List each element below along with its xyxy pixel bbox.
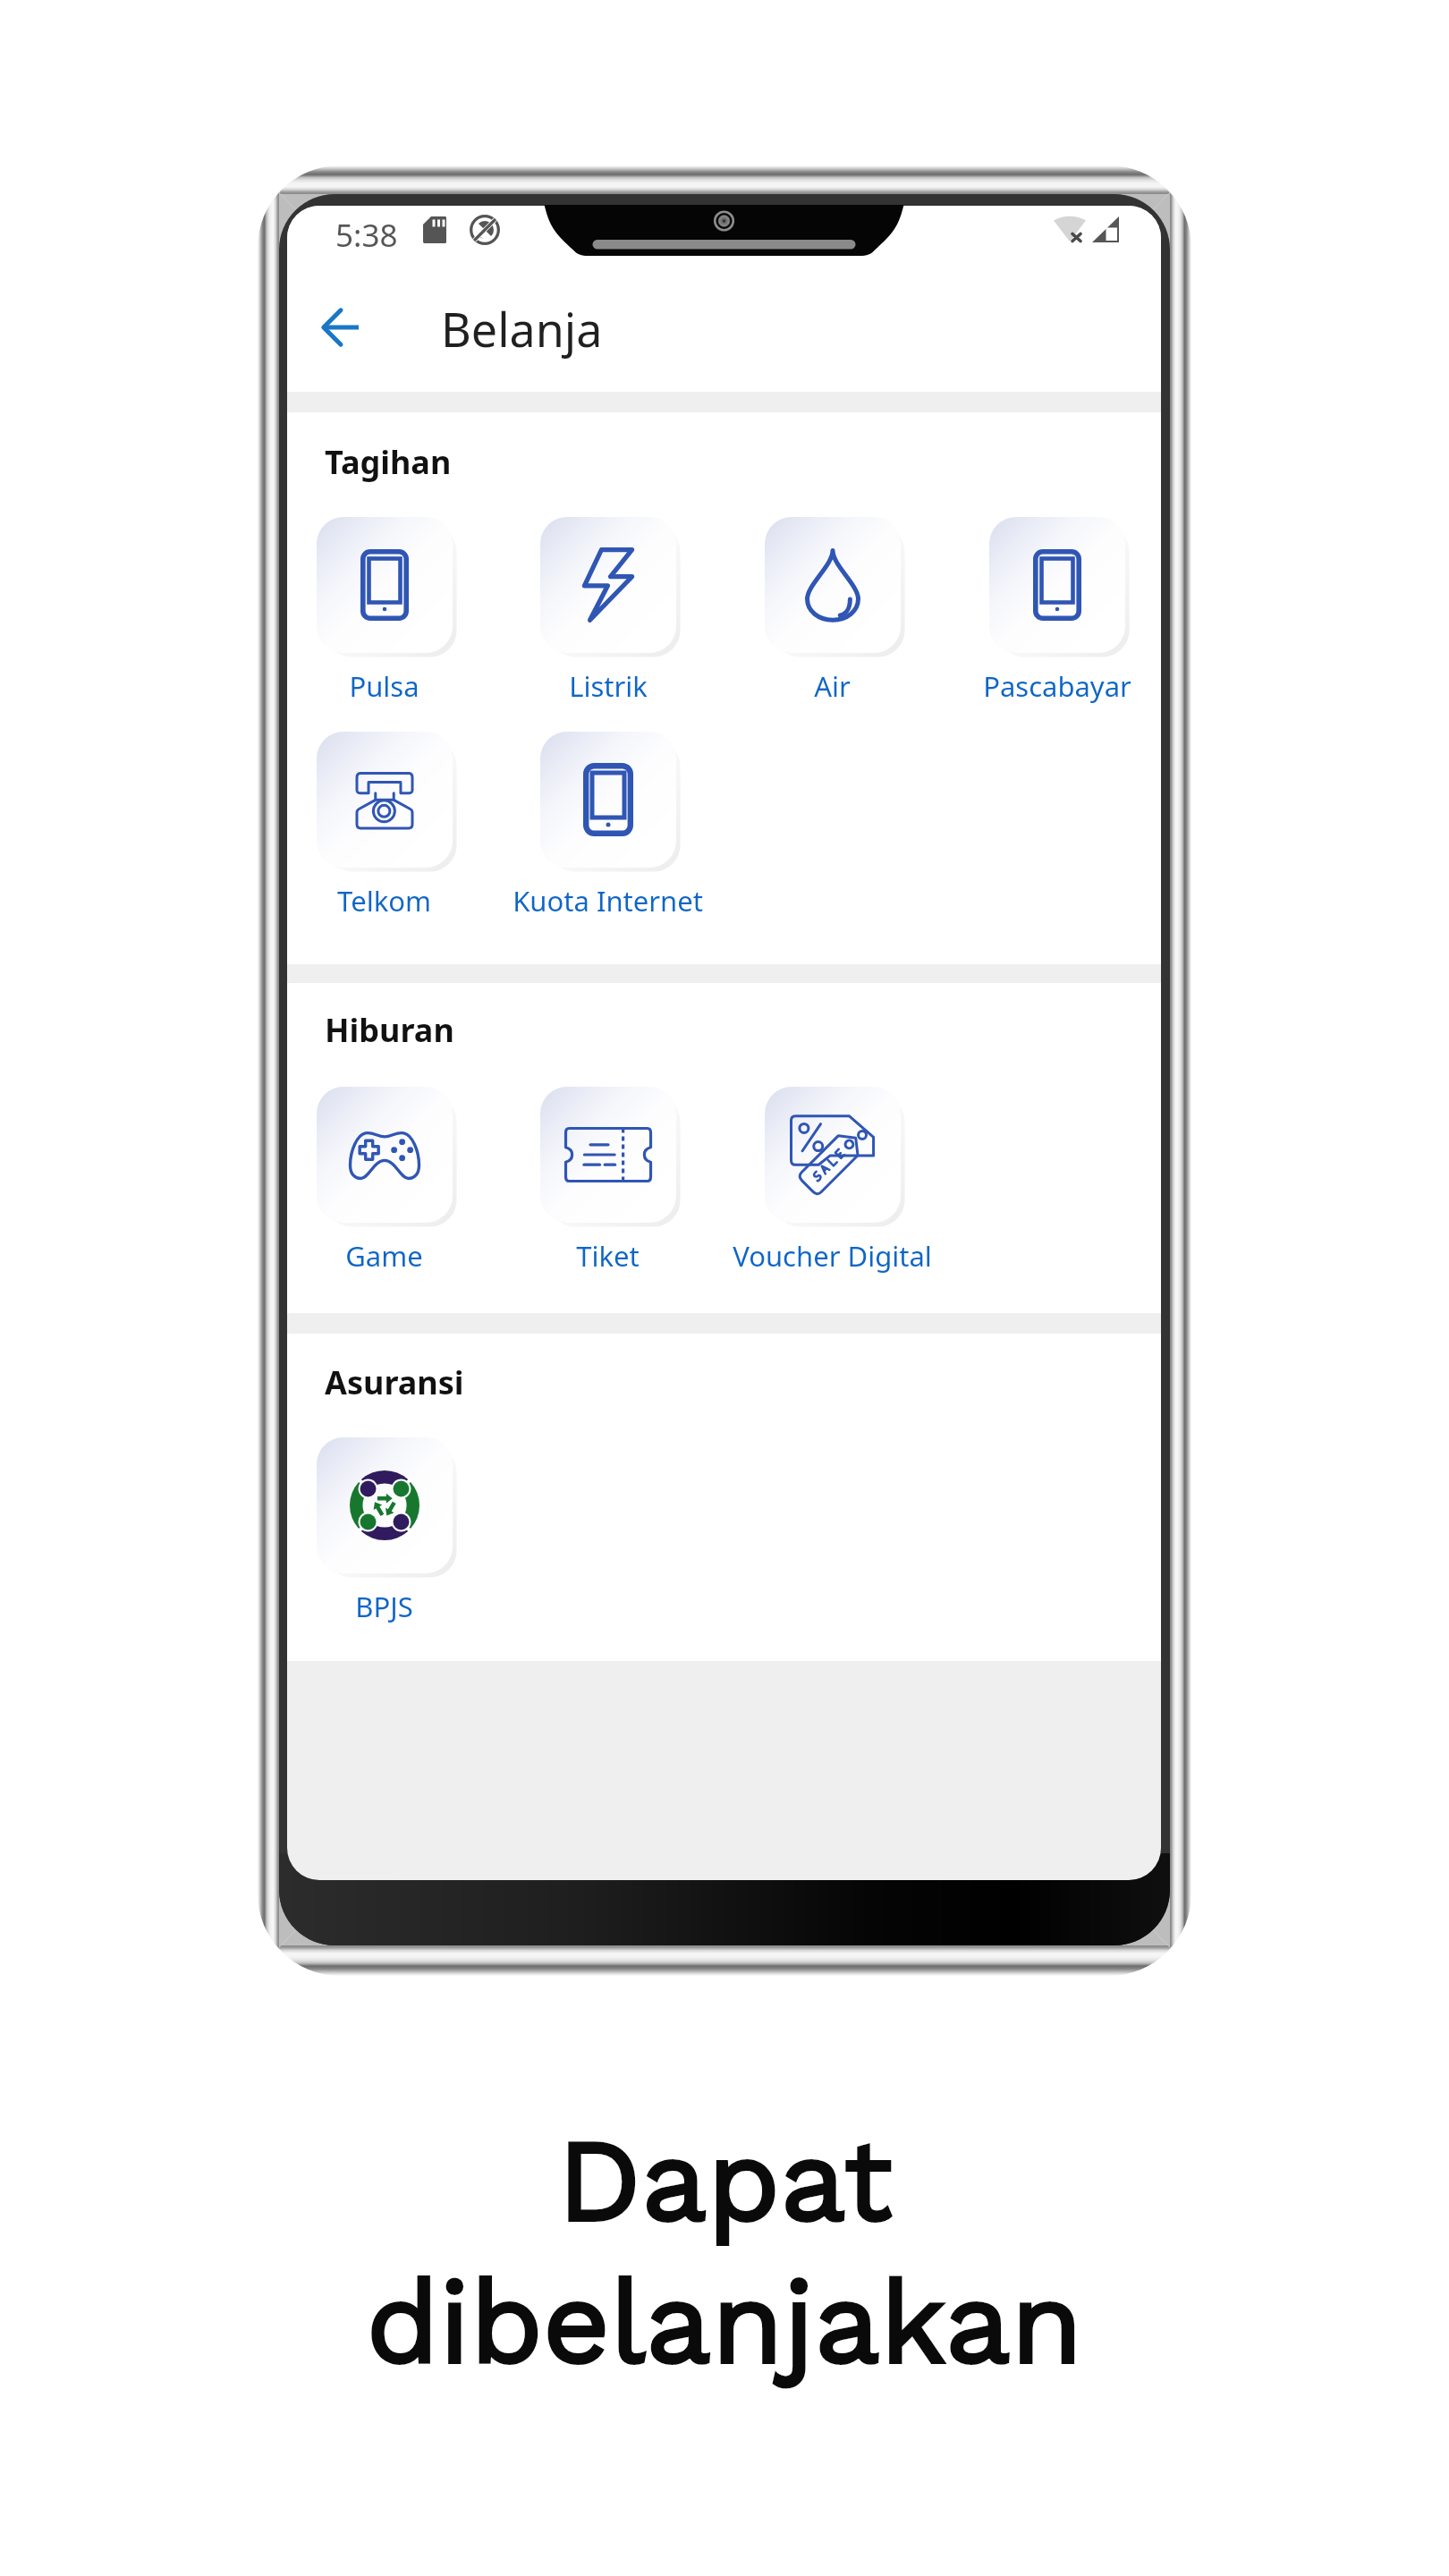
- staticText: Voucher Digital: [733, 1237, 932, 1275]
- staticText: Pulsa: [349, 667, 419, 705]
- button[interactable]: Game: [287, 1087, 496, 1275]
- button[interactable]: Back: [300, 286, 382, 369]
- button[interactable]: Listrik: [496, 517, 720, 705]
- staticText: Listrik: [569, 667, 648, 705]
- button[interactable]: Tiket: [496, 1087, 720, 1275]
- staticText: Hiburan: [325, 1008, 454, 1052]
- button[interactable]: Air: [720, 517, 945, 705]
- staticText: 5:38: [335, 214, 398, 257]
- staticText: Kuota Internet: [513, 882, 703, 919]
- button[interactable]: Voucher Digital: [720, 1087, 945, 1275]
- button[interactable]: Pulsa: [287, 517, 496, 705]
- button[interactable]: Kuota Internet: [496, 732, 720, 919]
- staticText: Air: [814, 667, 851, 705]
- button[interactable]: Pascabayar: [945, 517, 1161, 705]
- staticText: Belanja: [441, 297, 603, 360]
- staticText: Telkom: [337, 882, 431, 919]
- staticText: Game: [345, 1237, 423, 1275]
- staticText: BPJS: [355, 1588, 413, 1625]
- staticText: Asuransi: [325, 1360, 464, 1404]
- staticText: Tagihan: [325, 440, 452, 484]
- staticText: Tiket: [576, 1237, 640, 1275]
- button[interactable]: Telkom: [287, 732, 496, 919]
- staticText: dibelanjakan: [366, 2254, 1083, 2390]
- staticText: Dapat: [557, 2112, 893, 2248]
- button[interactable]: BPJS: [287, 1437, 496, 1625]
- staticText: Pascabayar: [983, 667, 1131, 705]
